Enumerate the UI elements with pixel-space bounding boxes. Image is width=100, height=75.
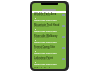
button[interactable]: Wildlife Park Area xyxy=(34,13,64,24)
staticText: 15 km from you xyxy=(34,58,51,61)
staticText: 12 km from you xyxy=(34,14,51,17)
staticText: Wildlife Park Area xyxy=(34,12,57,15)
staticText: Forest Camp Site xyxy=(34,45,55,48)
staticText: Open now until 6 pm xyxy=(34,63,57,66)
button[interactable]: Forest Camp Site xyxy=(34,46,64,57)
staticText: Open now until 6 pm xyxy=(34,30,57,33)
button[interactable]: Mountain Trail Head xyxy=(34,24,64,35)
button[interactable]: Riverside Walkway xyxy=(34,35,64,46)
staticText: Hillside Gardens xyxy=(34,67,55,68)
staticText: 21 km from you xyxy=(34,47,51,50)
staticText: Open now until 6 pm xyxy=(34,41,57,44)
staticText: Open now until 6 pm xyxy=(34,52,57,55)
staticText: Riverside Walkway xyxy=(34,34,58,37)
staticText: 3 km from you xyxy=(34,36,49,39)
button[interactable]: Hillside Gardens xyxy=(34,68,64,69)
staticText: 8 km from you xyxy=(34,25,49,28)
staticText: Open now until 6 pm xyxy=(34,19,57,22)
button[interactable]: Tab xyxy=(42,9,56,11)
staticText: Mountain Trail Head xyxy=(34,23,60,26)
button[interactable]: Lakeview Point xyxy=(34,57,64,68)
staticText: Lakeview Point xyxy=(34,56,53,59)
